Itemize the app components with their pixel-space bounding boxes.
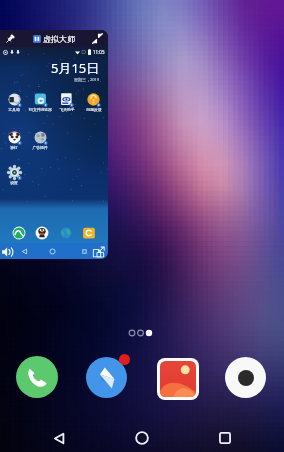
button[interactable]: Volume (1, 245, 15, 259)
button[interactable]: 神灯 (1, 130, 27, 150)
button[interactable]: Home (129, 425, 155, 451)
button[interactable]: Recent apps (82, 249, 87, 254)
button[interactable]: App store (12, 226, 26, 240)
staticText: 星期三，2019 (74, 77, 100, 82)
button[interactable]: Photos (160, 361, 196, 397)
button[interactable]: Home (49, 248, 56, 255)
button[interactable]: Back (46, 425, 72, 451)
staticText: 飞天助手 (59, 107, 75, 112)
button[interactable]: Browser (86, 357, 127, 398)
button[interactable]: Minimize window (92, 33, 103, 44)
button[interactable]: Phone (16, 356, 58, 398)
staticText: 工具箱 (8, 107, 20, 112)
button[interactable]: QQ (35, 226, 49, 240)
staticText: 设置 (10, 180, 18, 185)
button[interactable]: Split screen (91, 245, 106, 259)
button[interactable]: 扫文件浏览器 (27, 92, 53, 112)
button[interactable]: Folder (82, 226, 96, 240)
staticText: 广告插件 (32, 145, 48, 150)
staticText: 问题反馈 (86, 107, 102, 112)
staticText: 5月15日 (51, 59, 100, 77)
staticText: 11:05 (93, 49, 105, 55)
button[interactable]: Camera (225, 357, 266, 398)
button[interactable]: 工具箱 (1, 92, 27, 112)
button[interactable]: Pin window (4, 33, 16, 45)
staticText: 扫文件浏览器 (29, 107, 52, 112)
staticText: 虚拟大师 (43, 34, 75, 44)
button[interactable]: 飞天助手 (53, 92, 80, 112)
button[interactable]: 设置 (1, 165, 27, 185)
button[interactable]: 广告插件 (27, 130, 53, 150)
button[interactable]: Browser (59, 226, 73, 240)
button[interactable]: Recent apps (212, 425, 238, 451)
button[interactable]: Back (21, 248, 28, 255)
staticText: 神灯 (10, 145, 18, 150)
button[interactable]: 问题反馈 (80, 92, 107, 112)
